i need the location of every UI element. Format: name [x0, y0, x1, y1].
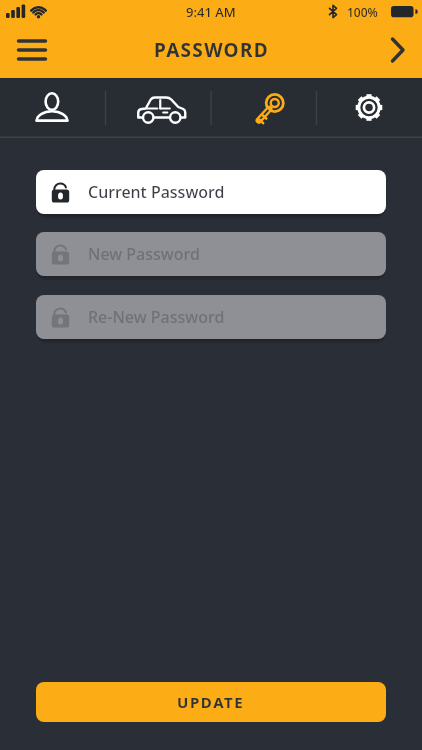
button[interactable]: [105, 78, 210, 138]
button[interactable]: [0, 78, 105, 138]
staticText: UPDATE: [177, 692, 245, 712]
staticText: PASSWORD: [154, 37, 269, 63]
button[interactable]: [316, 78, 422, 138]
staticText: New Password: [88, 243, 200, 265]
staticText: 100%: [347, 4, 378, 20]
button[interactable]: [391, 37, 405, 63]
button[interactable]: UPDATE: [36, 682, 386, 722]
staticText: Current Password: [88, 181, 225, 203]
staticText: 9:41 AM: [186, 3, 236, 21]
button[interactable]: [210, 78, 316, 138]
button[interactable]: Current Password: [36, 170, 386, 214]
button[interactable]: New Password: [36, 232, 386, 276]
staticText: Re-New Password: [88, 306, 225, 328]
button[interactable]: Re-New Password: [36, 295, 386, 339]
button[interactable]: [17, 39, 47, 61]
